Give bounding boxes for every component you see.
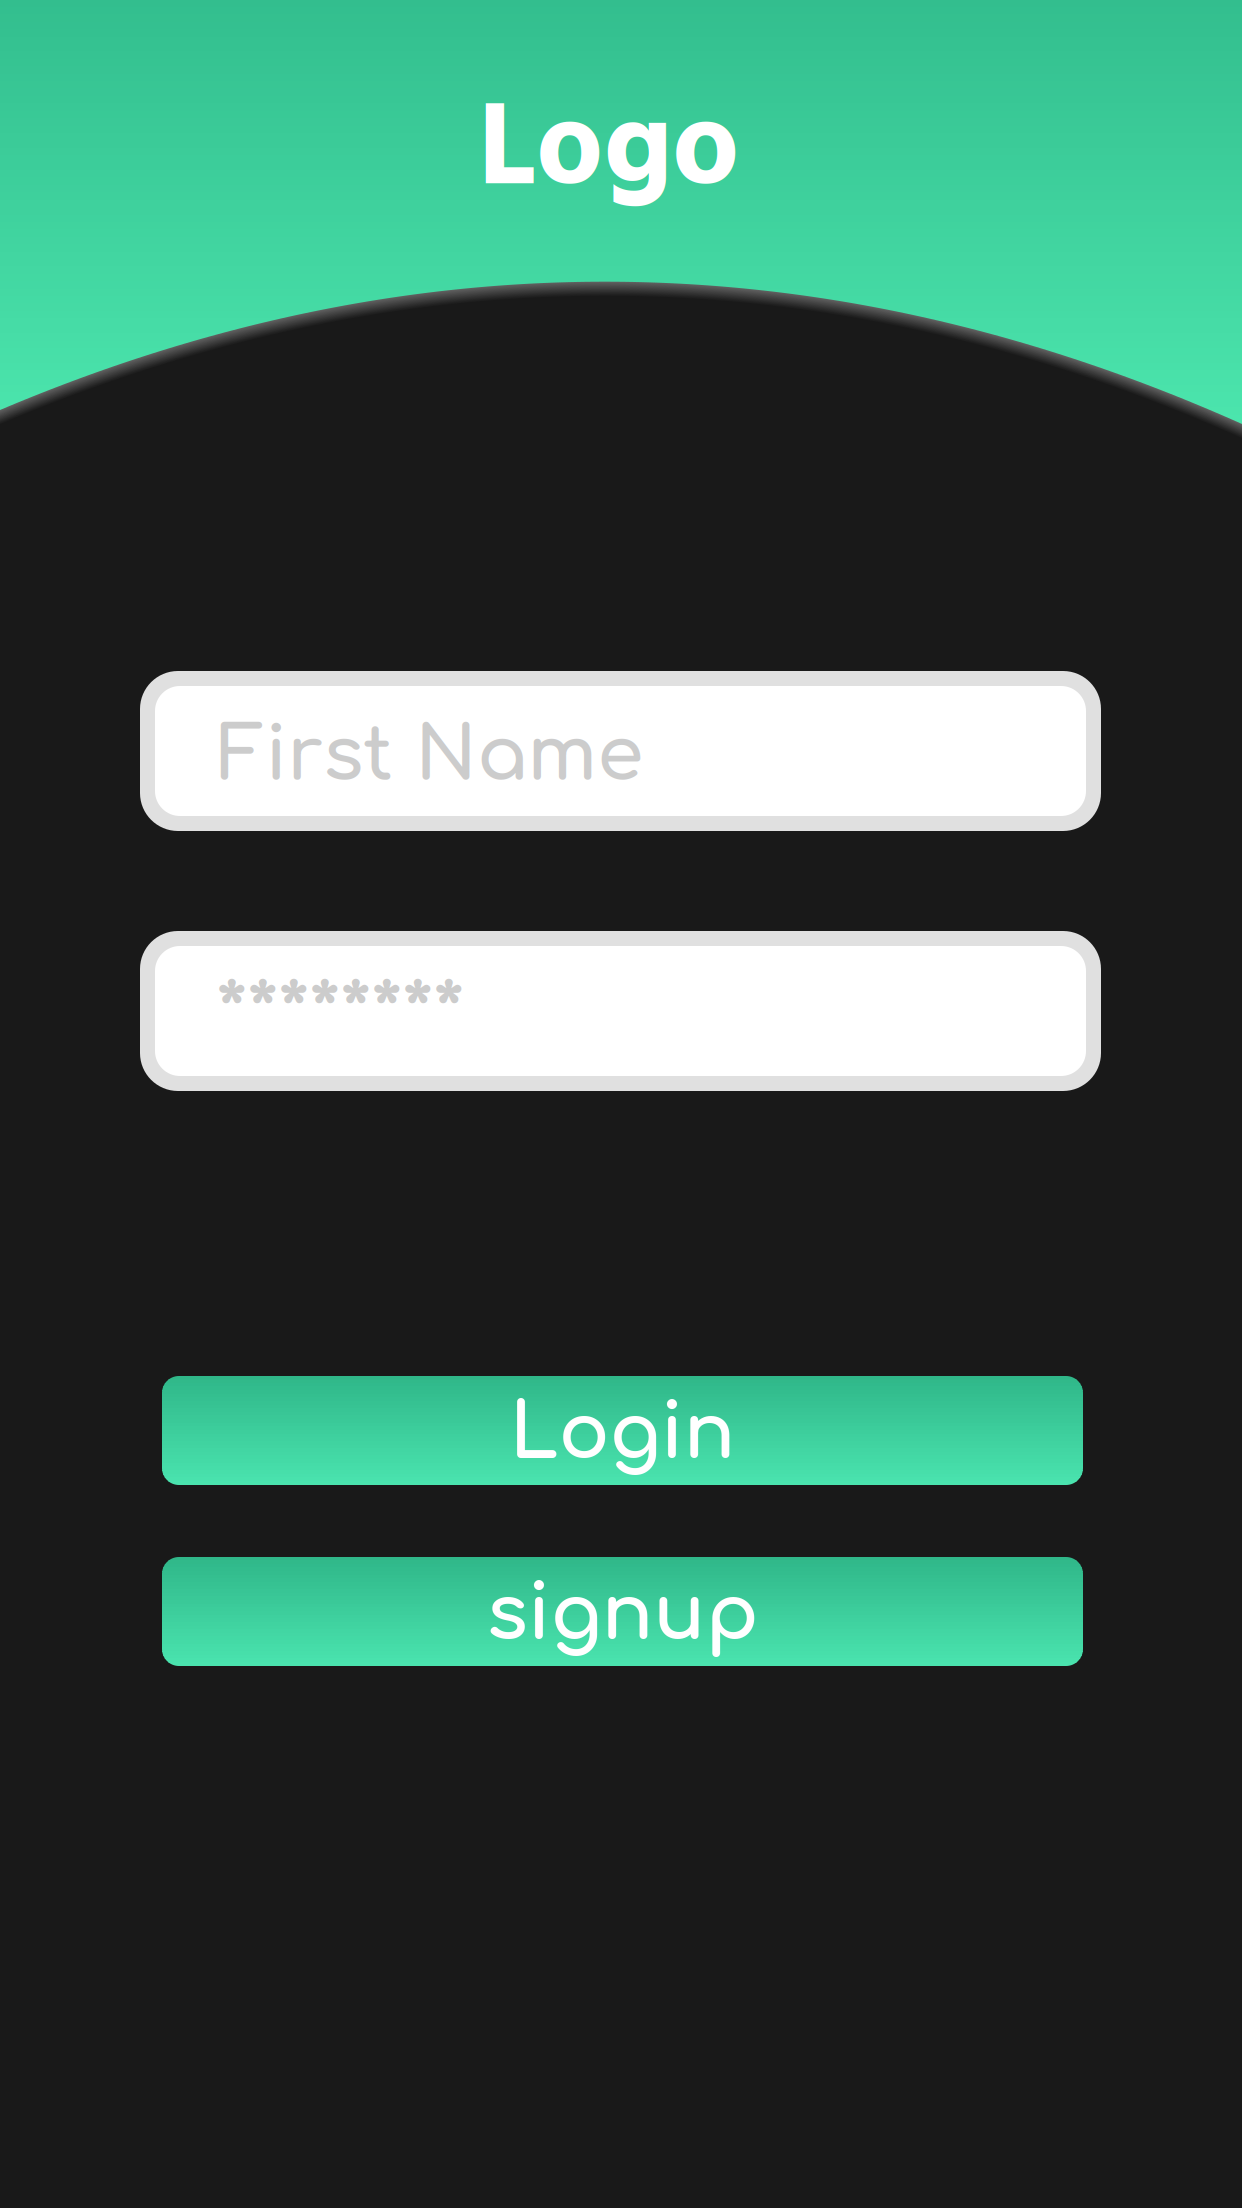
staticText: Logo <box>478 58 739 248</box>
button[interactable]: ******** <box>140 931 1101 1091</box>
staticText: Login <box>509 1391 735 1476</box>
staticText: signup <box>486 1572 758 1657</box>
button[interactable]: Login <box>162 1376 1083 1485</box>
button[interactable]: signup <box>162 1557 1083 1666</box>
button[interactable]: First Name <box>140 671 1101 831</box>
staticText: ******** <box>216 971 464 1062</box>
staticText: First Name <box>218 714 643 797</box>
